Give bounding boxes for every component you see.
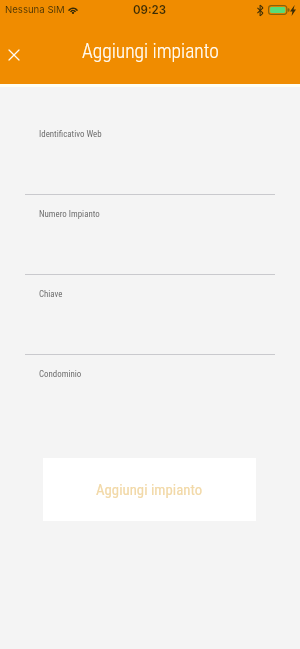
button[interactable]: Condominio bbox=[0, 350, 300, 430]
button[interactable]: Identificativo Web bbox=[0, 110, 300, 190]
staticText: Nessuna SIM bbox=[5, 4, 65, 16]
button[interactable]: Chiave bbox=[0, 270, 300, 350]
staticText: Aggiungi impianto bbox=[96, 481, 203, 498]
button[interactable]: Aggiungi impianto bbox=[43, 458, 256, 521]
staticText: Chiave bbox=[39, 289, 63, 299]
button[interactable]: Numero Impianto bbox=[0, 190, 300, 270]
staticText: Aggiungi impianto bbox=[82, 40, 219, 63]
button[interactable]: Close bbox=[0, 39, 30, 71]
staticText: Identificativo Web bbox=[39, 129, 102, 139]
staticText: Numero Impianto bbox=[39, 209, 100, 219]
staticText: Condominio bbox=[39, 369, 82, 379]
staticText: 09:23 bbox=[133, 3, 167, 17]
